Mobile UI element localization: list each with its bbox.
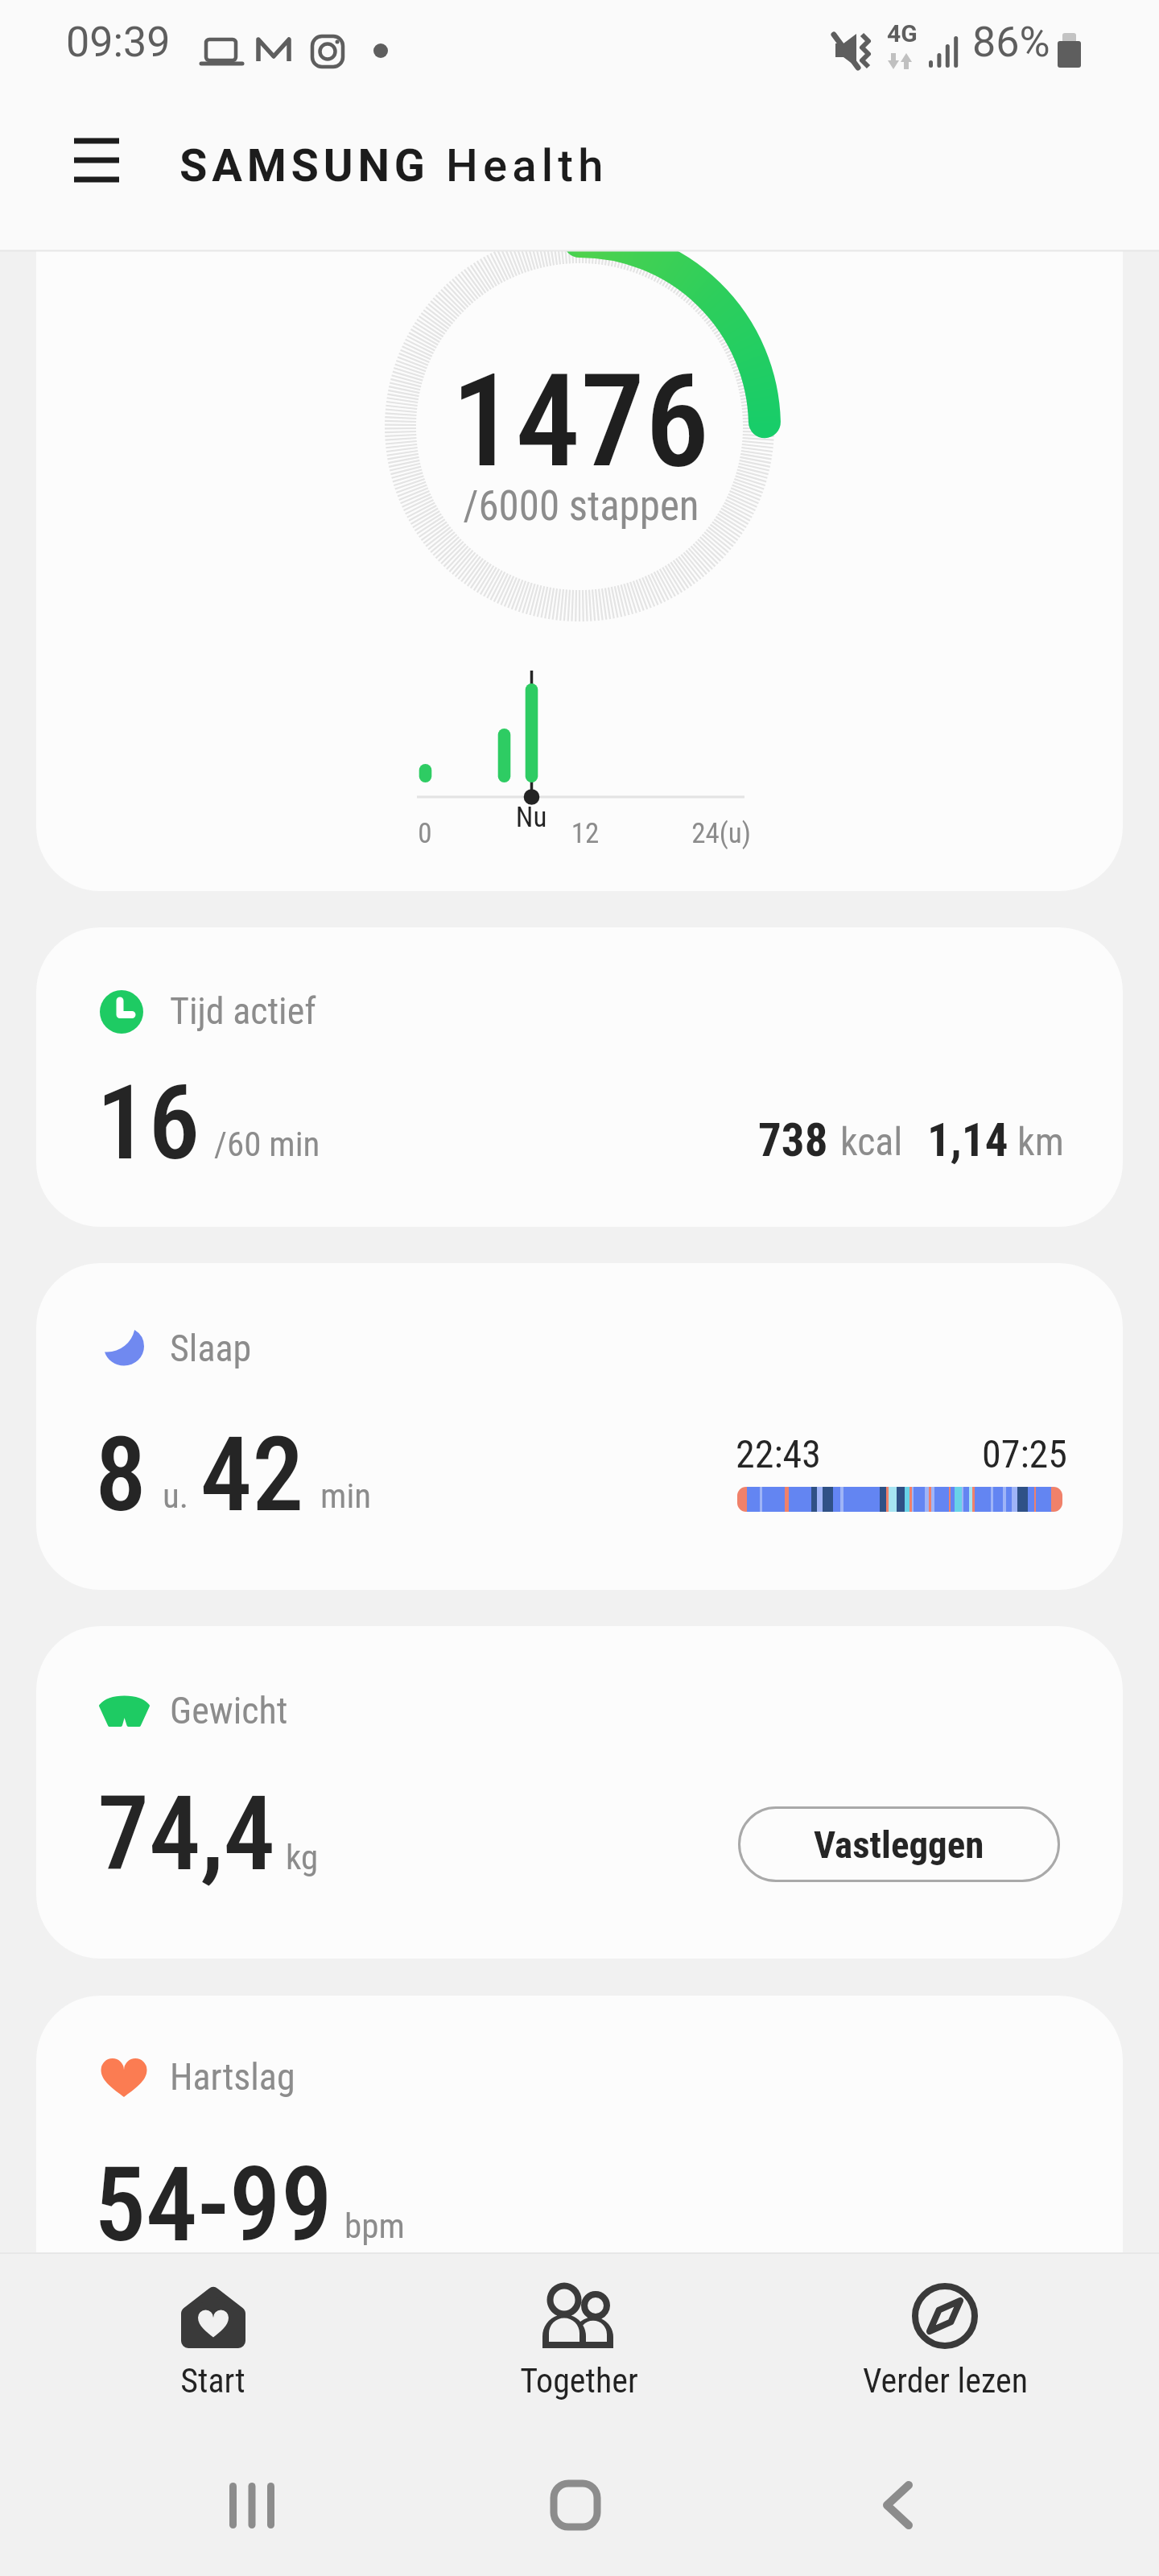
button[interactable]: Hartslag bbox=[36, 1996, 1123, 2253]
staticText: 8 bbox=[95, 1414, 147, 1535]
staticText: Gewicht bbox=[170, 1689, 288, 1732]
staticText: /60 min bbox=[214, 1124, 320, 1164]
staticText: SAMSUNG bbox=[179, 139, 430, 192]
button[interactable]: Slaap bbox=[36, 1263, 1123, 1590]
staticText: km bbox=[1017, 1119, 1064, 1164]
staticText: bpm bbox=[344, 2206, 405, 2246]
staticText: Hartslag bbox=[170, 2055, 295, 2099]
staticText: 09:39 bbox=[66, 18, 171, 67]
staticText: Health bbox=[446, 139, 608, 192]
staticText: 4G bbox=[887, 19, 918, 47]
button[interactable]: Vastleggen bbox=[738, 1806, 1060, 1882]
staticText: 07:25 bbox=[982, 1431, 1067, 1476]
button[interactable]: Gewicht bbox=[36, 1626, 1123, 1959]
staticText: 54-99 bbox=[94, 2145, 332, 2265]
staticText: 16 bbox=[97, 1063, 200, 1183]
staticText: u. bbox=[163, 1476, 189, 1516]
staticText: 1,14 bbox=[927, 1113, 1008, 1167]
staticText: /6000 stappen bbox=[340, 482, 823, 530]
staticText: Slaap bbox=[170, 1327, 252, 1370]
staticText: 738 bbox=[758, 1113, 828, 1167]
button[interactable]: Stappen bbox=[36, 251, 1123, 891]
button[interactable]: Tijd actief bbox=[36, 927, 1123, 1227]
button[interactable]: Together bbox=[396, 2254, 762, 2415]
staticText: 1476 bbox=[339, 346, 822, 497]
staticText: Together bbox=[396, 2361, 762, 2401]
staticText: 12 bbox=[537, 817, 633, 850]
staticText: kg bbox=[286, 1837, 319, 1877]
staticText: 0 bbox=[377, 817, 473, 850]
staticText: Tijd actief bbox=[170, 989, 316, 1033]
staticText: Vastleggen bbox=[814, 1823, 984, 1867]
staticText: min bbox=[320, 1476, 372, 1516]
staticText: Nu bbox=[467, 801, 596, 834]
staticText: 24(u) bbox=[641, 817, 802, 850]
staticText: 22:43 bbox=[736, 1431, 821, 1476]
button[interactable]: Verder lezen bbox=[762, 2254, 1128, 2415]
staticText: Verder lezen bbox=[762, 2361, 1128, 2401]
staticText: 42 bbox=[200, 1414, 304, 1535]
button[interactable]: Open navigation menu bbox=[55, 113, 140, 209]
staticText: kcal bbox=[840, 1119, 903, 1164]
button[interactable]: Start bbox=[30, 2254, 396, 2415]
staticText: Start bbox=[30, 2361, 396, 2401]
staticText: 86% bbox=[972, 18, 1050, 67]
staticText: 74,4 bbox=[97, 1773, 275, 1894]
